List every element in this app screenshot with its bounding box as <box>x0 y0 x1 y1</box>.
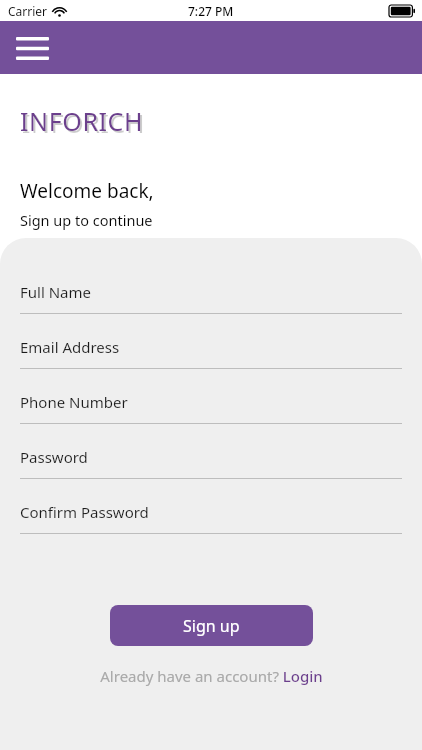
staticText: Password <box>20 447 88 467</box>
staticText: INFORICH <box>20 104 144 138</box>
staticText: 7:27 PM <box>188 3 234 19</box>
staticText: Carrier <box>8 3 48 19</box>
staticText: Confirm Password <box>20 502 149 522</box>
staticText: Phone Number <box>20 392 128 412</box>
staticText: Welcome back, <box>20 178 154 204</box>
button[interactable]: Full Name <box>20 282 402 314</box>
button[interactable]: Phone Number <box>20 392 402 424</box>
button[interactable]: Password <box>20 447 402 479</box>
staticText: INFORICH <box>22 106 146 140</box>
button[interactable]: Open navigation menu <box>10 28 54 68</box>
staticText: Full Name <box>20 282 91 302</box>
button[interactable]: Already have an account? Login <box>94 663 329 689</box>
staticText: Sign up to continue <box>20 210 153 230</box>
button[interactable]: Email Address <box>20 337 402 369</box>
staticText: Already have an account? Login <box>100 666 323 686</box>
button[interactable]: Confirm Password <box>20 502 402 534</box>
button[interactable]: Sign up <box>110 605 313 646</box>
staticText: Email Address <box>20 337 120 357</box>
staticText: Sign up <box>183 615 240 637</box>
